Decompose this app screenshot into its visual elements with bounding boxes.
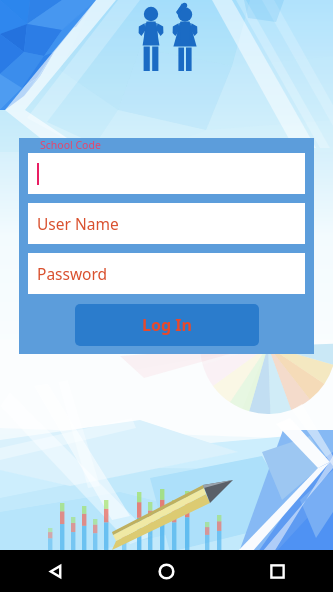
- staticText: Password: [37, 263, 108, 284]
- staticText: School Code: [40, 138, 101, 152]
- button[interactable]: Home: [111, 550, 222, 592]
- button[interactable]: Password: [28, 253, 305, 294]
- button[interactable]: [28, 153, 305, 194]
- button[interactable]: Back: [0, 550, 111, 592]
- button[interactable]: Recent apps: [222, 550, 333, 592]
- staticText: Log In: [142, 314, 192, 336]
- staticText: User Name: [37, 213, 119, 234]
- button[interactable]: Log In: [75, 304, 259, 346]
- button[interactable]: User Name: [28, 203, 305, 244]
